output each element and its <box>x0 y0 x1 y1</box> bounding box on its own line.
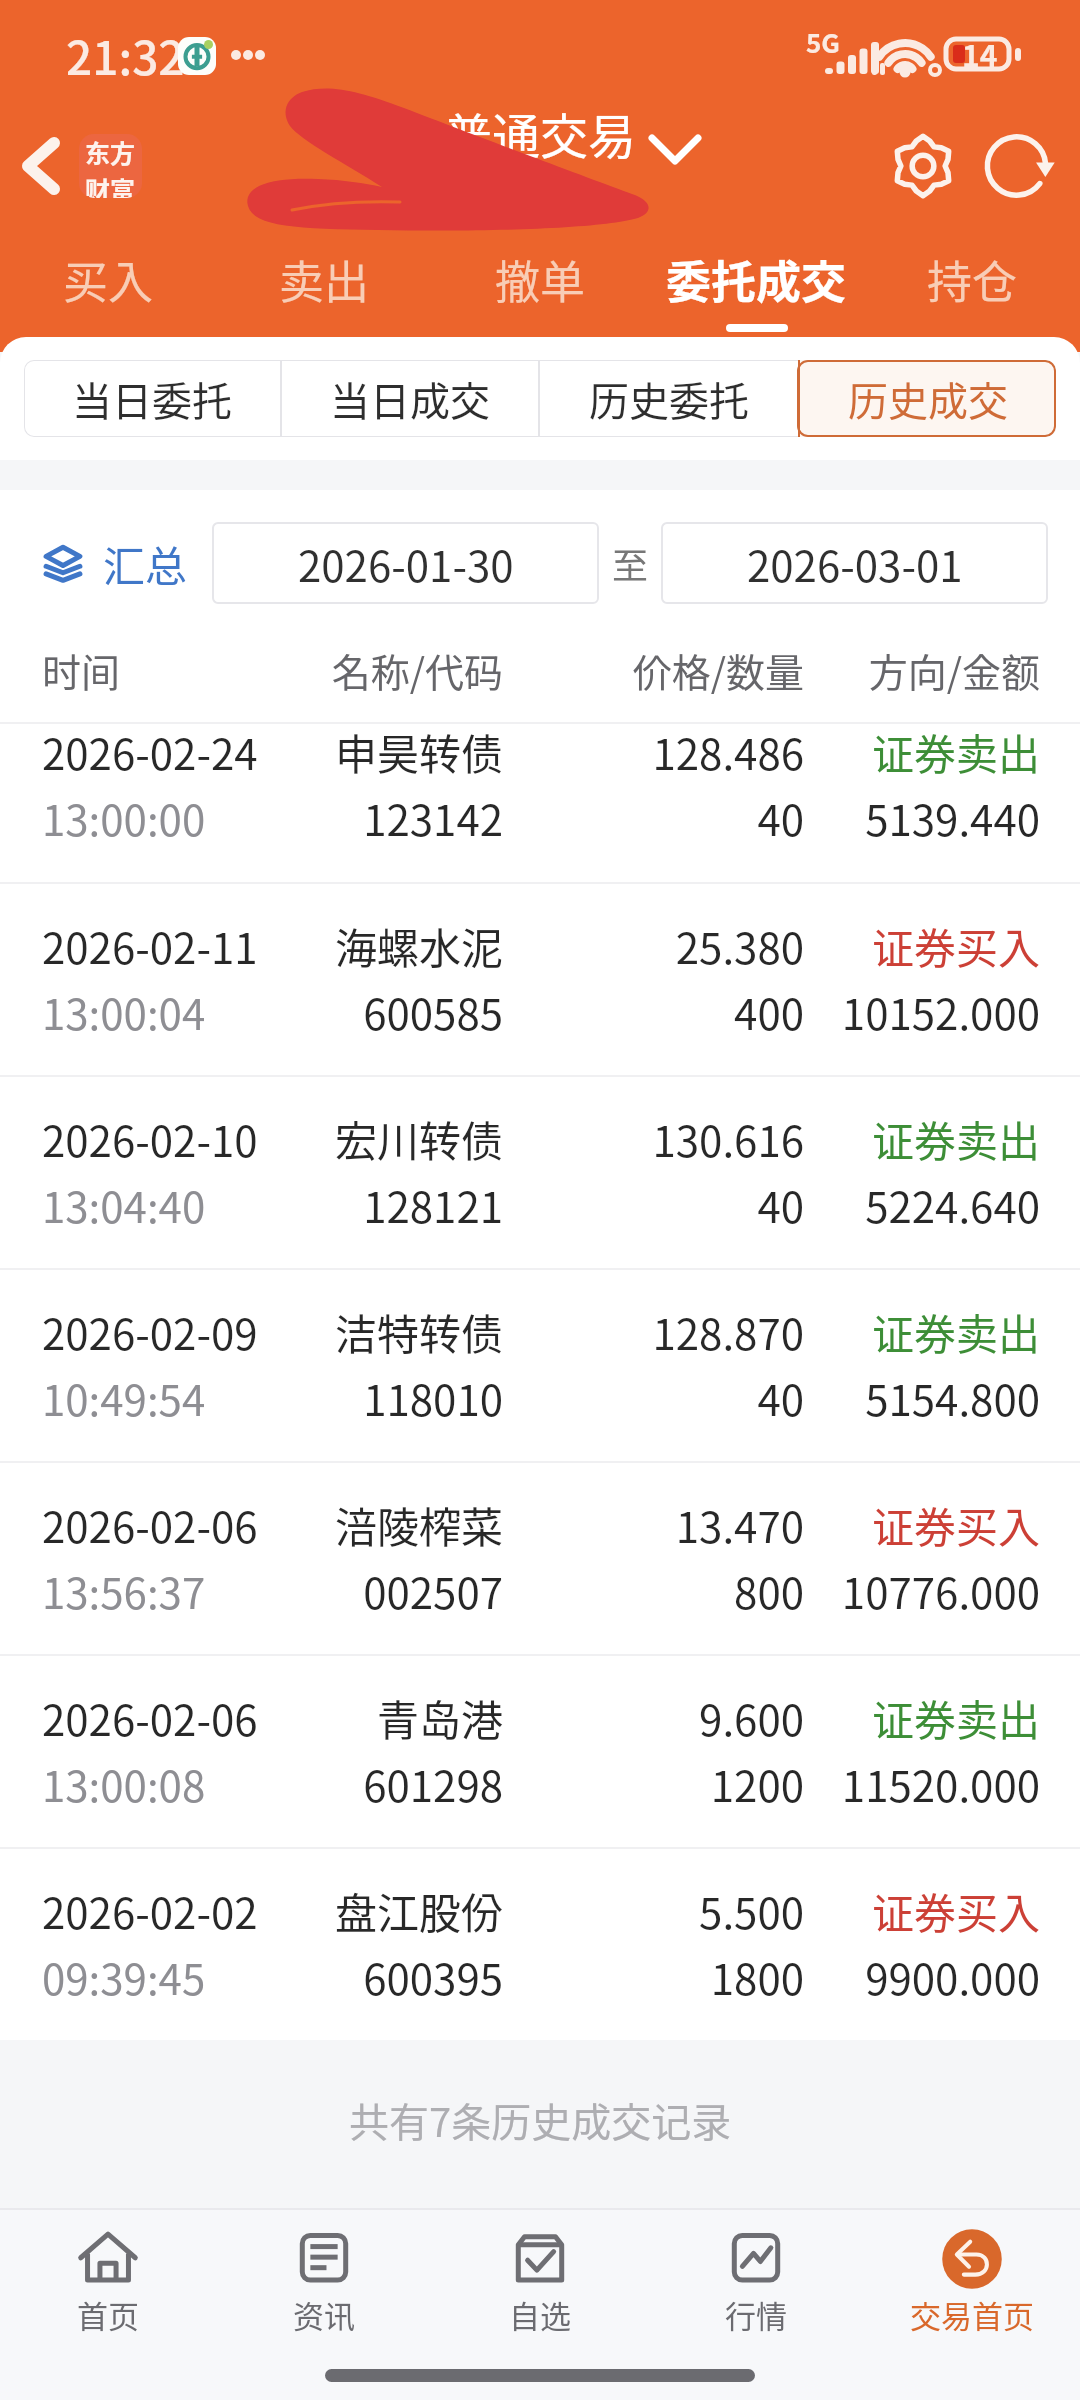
button[interactable]: 2026-01-30 <box>212 522 599 604</box>
button[interactable]: 2026-02-09 <box>0 1270 1080 1461</box>
staticText: 800 <box>0 1560 804 1621</box>
staticText: 25.380 <box>0 915 804 976</box>
button[interactable]: 持仓 <box>864 247 1080 345</box>
button[interactable]: 返回 <box>4 129 78 203</box>
staticText: 2026-01-30 <box>298 533 514 594</box>
staticText: 13:00:04 <box>42 981 206 1042</box>
button[interactable]: 2026-02-24 <box>0 724 1080 882</box>
staticText: 证券买入 <box>0 915 1040 976</box>
staticText: 5224.640 <box>0 1174 1040 1235</box>
staticText: 600585 <box>0 981 503 1042</box>
staticText: 证券买入 <box>0 1880 1040 1941</box>
staticText: 洁特转债 <box>0 1301 503 1362</box>
staticText: 2026-02-02 <box>42 1880 258 1941</box>
staticText: 卖出 <box>279 247 370 312</box>
button[interactable]: 2026-02-06 <box>0 1463 1080 1654</box>
staticText: 共有7条历史成交记录 <box>349 2091 732 2149</box>
staticText: 40 <box>0 787 804 848</box>
staticText: 2026-02-10 <box>42 1108 258 1169</box>
button[interactable]: 历史成交 <box>799 360 1056 437</box>
staticText: 11520.000 <box>0 1753 1040 1814</box>
staticText: 21:32 <box>66 22 185 89</box>
staticText: 涪陵榨菜 <box>0 1494 503 1555</box>
staticText: 130.616 <box>0 1108 804 1169</box>
staticText: 10:49:54 <box>42 1367 206 1428</box>
staticText: 400 <box>0 981 804 1042</box>
staticText: 汇总 <box>103 533 188 594</box>
staticText: 002507 <box>0 1560 503 1621</box>
staticText: 09:39:45 <box>42 1946 206 2007</box>
staticText: 普通交易 <box>444 98 637 168</box>
staticText: 交易首页 <box>910 2292 1034 2337</box>
button[interactable]: 当日委托 <box>24 360 280 437</box>
staticText: 13:00:00 <box>42 787 206 848</box>
button[interactable]: 自选 <box>432 2210 648 2340</box>
button[interactable]: 当日成交 <box>282 360 538 437</box>
staticText: 首页 <box>77 2292 139 2337</box>
staticText: 撤单 <box>495 247 586 312</box>
staticText: 1800 <box>0 1946 804 2007</box>
staticText: 13.470 <box>0 1494 804 1555</box>
button[interactable]: 资讯 <box>216 2210 432 2340</box>
staticText: 40 <box>0 1367 804 1428</box>
staticText: 128.486 <box>0 721 804 782</box>
staticText: 证券卖出 <box>0 1687 1040 1748</box>
staticText: 2026-02-06 <box>42 1494 258 1555</box>
staticText: 10776.000 <box>0 1560 1040 1621</box>
button[interactable]: 委托成交 <box>648 247 864 345</box>
staticText: 2026-02-24 <box>42 721 258 782</box>
staticText: 历史成交 <box>848 370 1008 428</box>
button[interactable]: 东方财富 <box>79 134 142 198</box>
staticText: 证券买入 <box>0 1494 1040 1555</box>
staticText: 14 <box>962 32 998 75</box>
staticText: 128.870 <box>0 1301 804 1362</box>
staticText: 海螺水泥 <box>0 915 503 976</box>
button[interactable]: 刷新 <box>974 121 1064 211</box>
staticText: 持仓 <box>927 247 1018 312</box>
staticText: 2026-02-06 <box>42 1687 258 1748</box>
staticText: 证券卖出 <box>0 1301 1040 1362</box>
button[interactable]: 历史委托 <box>540 360 797 437</box>
staticText: 申昊转债 <box>0 721 503 782</box>
staticText: 2026-02-11 <box>42 915 258 976</box>
staticText: 9.600 <box>0 1687 804 1748</box>
button[interactable]: 汇总 <box>0 533 198 594</box>
button[interactable]: 2026-02-02 <box>0 1849 1080 2040</box>
button[interactable]: 2026-02-10 <box>0 1077 1080 1268</box>
staticText: 名称/代码 <box>0 642 503 698</box>
staticText: 委托成交 <box>666 247 847 312</box>
button[interactable]: 撤单 <box>432 247 648 345</box>
button[interactable]: 2026-03-01 <box>661 522 1048 604</box>
staticText: 当日委托 <box>72 370 232 428</box>
staticText: 财富 <box>85 171 136 198</box>
staticText: 盘江股份 <box>0 1880 503 1941</box>
staticText: 方向/金额 <box>0 642 1040 698</box>
staticText: 128121 <box>0 1174 503 1235</box>
button[interactable]: 设置 <box>878 121 968 211</box>
staticText: 5.500 <box>0 1880 804 1941</box>
button[interactable]: 行情 <box>648 2210 864 2340</box>
button[interactable]: 买入 <box>0 247 216 345</box>
staticText: 5G <box>806 23 840 61</box>
staticText: 买入 <box>63 247 154 312</box>
staticText: 证券卖出 <box>0 721 1040 782</box>
button[interactable]: 卖出 <box>216 247 432 345</box>
staticText: 2026-02-09 <box>42 1301 258 1362</box>
button[interactable]: 交易首页 <box>864 2210 1080 2340</box>
staticText: 价格/数量 <box>0 642 804 698</box>
staticText: 13:56:37 <box>42 1560 206 1621</box>
staticText: 601298 <box>0 1753 503 1814</box>
staticText: 118010 <box>0 1367 503 1428</box>
staticText: 1200 <box>0 1753 804 1814</box>
button[interactable]: 普通交易 <box>380 88 700 178</box>
button[interactable]: 首页 <box>0 2210 216 2340</box>
staticText: 40 <box>0 1174 804 1235</box>
staticText: 东方 <box>85 134 136 170</box>
button[interactable]: 2026-02-11 <box>0 884 1080 1075</box>
staticText: 青岛港 <box>0 1687 503 1748</box>
staticText: 600395 <box>0 1946 503 2007</box>
button[interactable]: 2026-02-06 <box>0 1656 1080 1847</box>
staticText: 自选 <box>509 2292 571 2337</box>
staticText: 当日成交 <box>330 370 490 428</box>
staticText: 历史委托 <box>589 370 749 428</box>
